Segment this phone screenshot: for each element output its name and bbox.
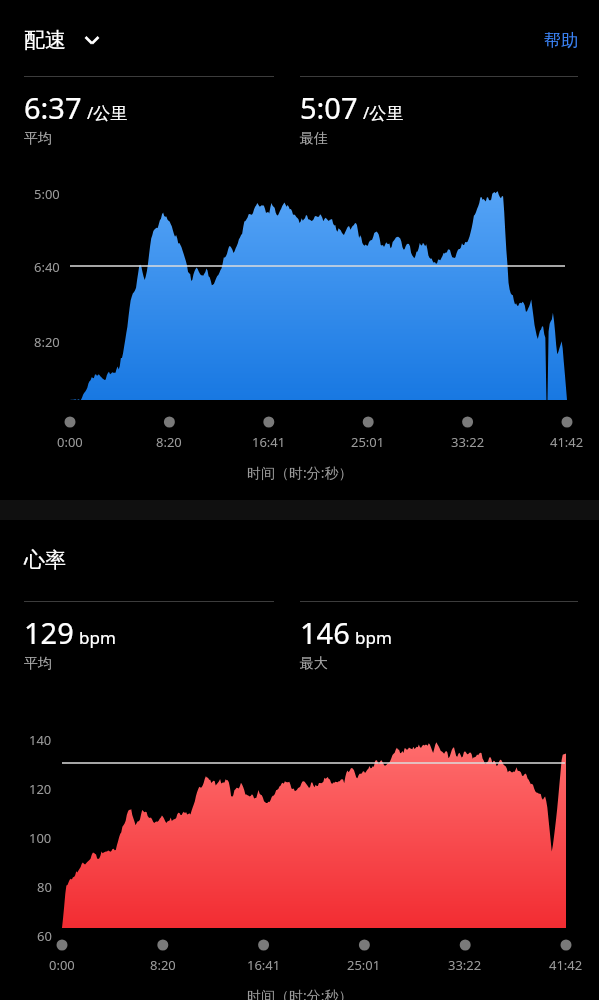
button[interactable]: 心率 (24, 547, 66, 573)
staticText: 帮助 (544, 30, 578, 51)
staticText: 平均 (24, 130, 52, 148)
staticText: 配速 (24, 27, 66, 53)
staticText: bpm (355, 626, 392, 649)
staticText: 最大 (300, 655, 328, 673)
staticText: 41:42 (550, 433, 584, 451)
staticText: 60 (37, 927, 52, 945)
staticText: 8:20 (34, 333, 60, 351)
staticText: 平均 (24, 655, 52, 673)
staticText: 33:22 (448, 956, 482, 974)
staticText: 6:37 (24, 88, 82, 127)
staticText: 时间（时:分:秒） (247, 463, 353, 482)
staticText: 33:22 (451, 433, 485, 451)
staticText: 140 (29, 731, 52, 749)
staticText: 0:00 (57, 433, 83, 451)
staticText: 16:41 (252, 433, 286, 451)
button[interactable]: 帮助 (544, 30, 578, 51)
staticText: bpm (79, 626, 116, 649)
staticText: 80 (37, 878, 52, 896)
other: 选择指标 (80, 28, 104, 52)
staticText: 100 (29, 829, 52, 847)
staticText: 0:00 (49, 956, 75, 974)
staticText: 16:41 (247, 956, 281, 974)
staticText: /公里 (87, 101, 128, 124)
staticText: 120 (29, 780, 52, 798)
staticText: 129 (24, 613, 74, 652)
staticText: 8:20 (150, 956, 176, 974)
staticText: 8:20 (156, 433, 182, 451)
staticText: 5:07 (300, 88, 358, 127)
staticText: 25:01 (347, 956, 381, 974)
staticText: 6:40 (34, 258, 60, 276)
staticText: 最佳 (300, 130, 328, 148)
button[interactable]: 配速 (24, 27, 104, 53)
staticText: 146 (300, 613, 350, 652)
staticText: 41:42 (549, 956, 583, 974)
staticText: 心率 (24, 547, 66, 573)
staticText: 时间（时:分:秒） (247, 986, 353, 1000)
staticText: 25:01 (351, 433, 385, 451)
staticText: 5:00 (34, 185, 60, 203)
staticText: /公里 (363, 101, 404, 124)
